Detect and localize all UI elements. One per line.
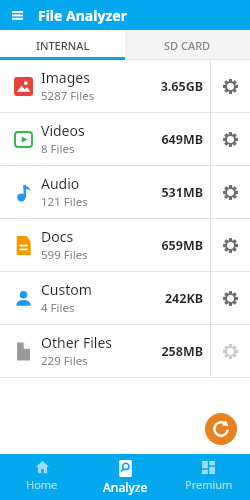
button[interactable]: Analyze: [84, 454, 167, 500]
staticText: 659MB: [161, 237, 203, 254]
button[interactable]: Docs: [0, 219, 250, 271]
button[interactable]: [211, 325, 250, 377]
staticText: Other Files: [41, 333, 113, 352]
button[interactable]: Home: [0, 454, 84, 500]
button[interactable]: [0, 0, 34, 30]
staticText: INTERNAL: [36, 38, 90, 53]
button[interactable]: Videos: [0, 113, 250, 165]
staticText: Images: [41, 68, 90, 87]
button[interactable]: Images: [0, 60, 250, 112]
staticText: Custom: [41, 280, 92, 299]
button[interactable]: [205, 413, 237, 445]
staticText: SD CARD: [164, 38, 211, 53]
staticText: Docs: [41, 227, 74, 246]
staticText: Audio: [41, 174, 80, 193]
button[interactable]: SD CARD: [125, 30, 250, 60]
staticText: 8 Files: [41, 141, 75, 157]
staticText: Home: [26, 477, 58, 492]
staticText: 258MB: [161, 343, 203, 360]
button[interactable]: [211, 113, 250, 165]
staticText: Premium: [185, 477, 233, 492]
button[interactable]: [211, 166, 250, 218]
staticText: File Analyzer: [38, 6, 127, 25]
staticText: Analyze: [103, 479, 148, 495]
button[interactable]: Premium: [167, 454, 250, 500]
staticText: Videos: [41, 121, 85, 140]
staticText: 599 Files: [41, 247, 88, 263]
staticText: 3.65GB: [160, 78, 203, 95]
staticText: 121 Files: [41, 194, 88, 210]
staticText: 229 Files: [41, 353, 88, 369]
button[interactable]: [211, 219, 250, 271]
button[interactable]: [211, 60, 250, 112]
staticText: 4 Files: [41, 300, 75, 316]
button[interactable]: Audio: [0, 166, 250, 218]
button[interactable]: [211, 272, 250, 324]
staticText: 649MB: [161, 131, 203, 148]
button[interactable]: Custom: [0, 272, 250, 324]
button[interactable]: INTERNAL: [0, 30, 125, 60]
staticText: 242KB: [164, 290, 203, 307]
staticText: 531MB: [161, 184, 203, 201]
button[interactable]: Other Files: [0, 325, 250, 377]
staticText: 5287 Files: [41, 88, 95, 104]
